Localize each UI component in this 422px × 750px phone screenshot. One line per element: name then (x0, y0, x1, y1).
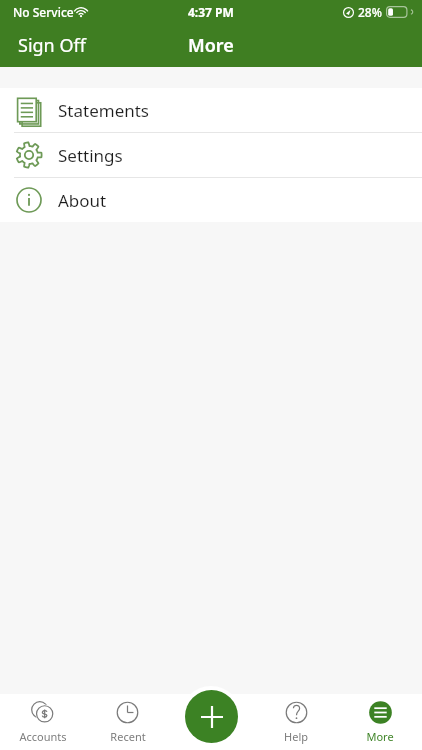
button[interactable]: More (338, 694, 422, 744)
staticText: Recent (110, 729, 146, 744)
staticText: More (188, 33, 234, 58)
staticText: 28% (358, 4, 382, 20)
button[interactable]: Accounts (0, 694, 85, 744)
button[interactable]: Recent (85, 694, 170, 744)
staticText: Help (284, 729, 308, 744)
staticText: Settings (58, 144, 123, 167)
button[interactable]: Help (254, 694, 338, 744)
staticText: About (58, 189, 107, 212)
staticText: Sign Off (18, 33, 86, 58)
staticText: No Service (13, 4, 74, 20)
staticText: Statements (58, 99, 150, 122)
button[interactable]: Add (181, 686, 241, 746)
staticText: More (366, 729, 394, 744)
staticText: 4:37 PM (188, 4, 234, 20)
button[interactable]: About (0, 178, 422, 222)
button[interactable]: Sign Off (0, 25, 104, 66)
staticText: Accounts (19, 729, 67, 744)
button[interactable]: Statements (0, 88, 422, 132)
button[interactable]: Settings (0, 133, 422, 177)
